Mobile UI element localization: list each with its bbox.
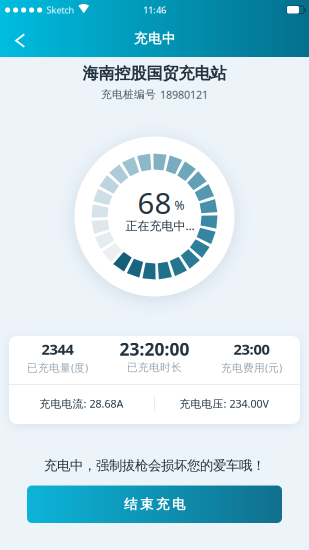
staticText: 充 电 中 <box>134 30 175 47</box>
staticText: 2344 <box>41 339 73 359</box>
button[interactable]: Back <box>0 20 40 57</box>
staticText: % <box>174 197 184 213</box>
staticText: 已充电时长 <box>127 361 182 374</box>
button[interactable]: 结 束 充 电 <box>27 485 282 523</box>
staticText: 充电桩编号 <box>101 88 156 101</box>
staticText: 23:00 <box>233 339 269 359</box>
staticText: 已充电量(度) <box>27 360 88 375</box>
staticText: 18980121 <box>160 87 208 102</box>
staticText: 充电中，强制拔枪会损坏您的爱车哦！ <box>44 457 265 474</box>
staticText: 11:46 <box>143 4 166 16</box>
staticText: 海南控股国贸充电站 <box>82 64 226 83</box>
staticText: 正在充电中... <box>125 217 194 233</box>
staticText: 结 束 充 电 <box>124 496 185 512</box>
staticText: 68 <box>137 183 171 222</box>
staticText: Sketch <box>46 4 74 16</box>
staticText: 充电电流: 28.68A <box>39 396 123 411</box>
staticText: 23:20:00 <box>119 337 189 360</box>
staticText: 充电费用(元) <box>221 360 282 375</box>
staticText: 充电电压: 234.00V <box>179 396 268 411</box>
